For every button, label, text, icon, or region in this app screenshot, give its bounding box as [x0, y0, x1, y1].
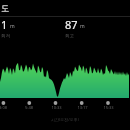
staticText: 1 [1, 17, 8, 32]
staticText: 3:08 [0, 105, 7, 110]
staticText: 5:48 [25, 105, 33, 110]
button[interactable]: 도 [1, 1, 41, 14]
staticText: 15:33 [103, 105, 114, 110]
staticText: 최고 [65, 33, 74, 39]
staticText: 시간(오전/오후) [51, 117, 79, 122]
staticText: m [10, 23, 15, 30]
staticText: 최저 [1, 33, 10, 39]
staticText: 도 [1, 3, 9, 13]
staticText: 87 [65, 17, 78, 32]
staticText: m [80, 23, 85, 30]
staticText: 13:17 [77, 105, 88, 110]
staticText: 10:33 [51, 105, 62, 110]
